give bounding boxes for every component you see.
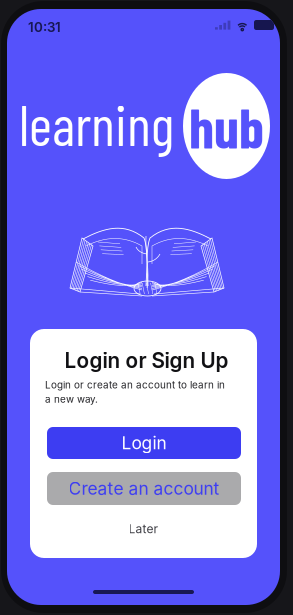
button[interactable]: Create an account <box>47 472 241 505</box>
staticText: Login or Sign Up <box>64 348 228 373</box>
staticText: hub <box>189 92 264 160</box>
staticText: Login or create an account to learn in a… <box>45 379 225 405</box>
staticText: 10:31 <box>28 19 61 35</box>
staticText: Login <box>121 432 166 453</box>
button[interactable]: Login <box>47 427 241 459</box>
staticText: Later <box>128 522 158 536</box>
staticText: Create an account <box>68 478 219 499</box>
button[interactable]: Later <box>30 516 257 542</box>
staticText: learning <box>19 90 174 157</box>
